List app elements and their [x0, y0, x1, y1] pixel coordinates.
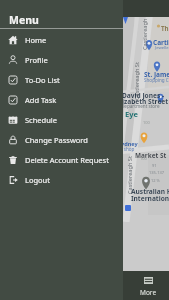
staticText: Schedule	[25, 115, 57, 125]
staticText: Th	[161, 24, 169, 32]
button[interactable]: Home	[0, 30, 123, 50]
button[interactable]: To-Do List	[0, 70, 123, 90]
staticText: Market St	[135, 151, 167, 160]
button[interactable]: Schedule	[0, 110, 123, 130]
staticText: David Jones -	[122, 91, 165, 100]
button[interactable]: Change Password	[0, 130, 123, 150]
staticText: To-Do List	[25, 75, 60, 85]
staticText: Cartier	[153, 38, 169, 47]
button[interactable]: More	[133, 275, 164, 299]
staticText: Menu	[9, 13, 39, 27]
staticText: 91	[152, 163, 157, 168]
staticText: International (	[131, 194, 169, 203]
staticText: More	[140, 288, 157, 297]
button[interactable]: Profile	[0, 50, 123, 70]
staticText: Eye	[125, 109, 138, 119]
staticText: Jewelle	[155, 45, 169, 51]
staticText: Profile	[25, 55, 48, 65]
staticText: Home	[25, 35, 47, 45]
staticText: Castlereagh St	[133, 62, 141, 100]
staticText: Delete Account Request	[25, 155, 109, 165]
staticText: 100	[140, 156, 147, 161]
staticText: Shopping C	[144, 77, 169, 83]
button[interactable]: Logout	[0, 170, 123, 190]
staticText: ydney	[121, 140, 138, 148]
staticText: St. James	[144, 70, 169, 79]
button[interactable]: Add Task	[0, 90, 123, 110]
staticText: Australian Ha	[131, 187, 169, 196]
staticText: Logout	[25, 175, 50, 185]
staticText: Department store	[121, 103, 160, 109]
staticText: Add Task	[25, 95, 57, 105]
staticText: 12 %	[151, 178, 160, 183]
staticText: 135-137	[149, 170, 165, 175]
staticText: Change Password	[25, 135, 88, 145]
staticText: e shop	[120, 146, 135, 152]
staticText: Castlereagh	[141, 18, 149, 50]
staticText: 100	[143, 120, 150, 125]
staticText: Castlereagh St	[126, 156, 134, 194]
staticText: lizabeth Street	[120, 97, 169, 106]
button[interactable]: Delete Account Request	[0, 150, 123, 170]
